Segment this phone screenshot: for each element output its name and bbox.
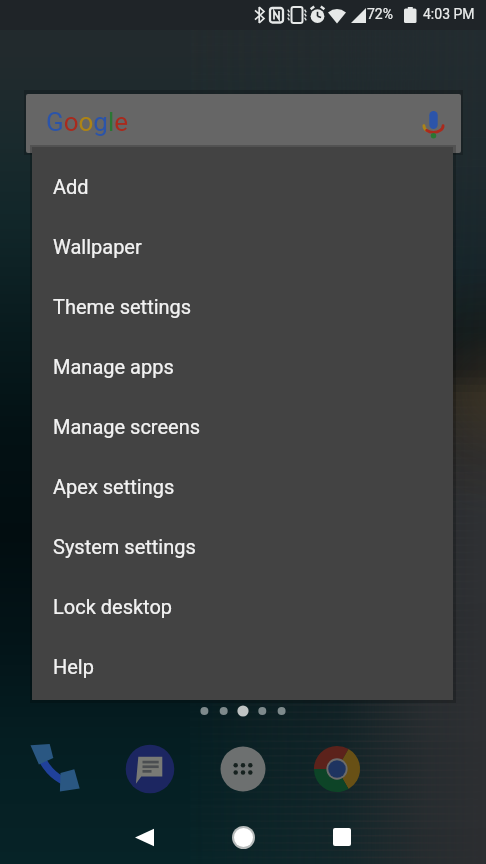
button[interactable]: Manage screens — [32, 396, 453, 456]
button[interactable]: Messages — [120, 739, 180, 799]
button[interactable]: Manage apps — [32, 336, 453, 396]
staticText: Wallpaper — [53, 235, 142, 258]
staticText: Lock desktop — [53, 595, 173, 618]
button[interactable]: Phone — [26, 739, 86, 799]
staticText: Google — [46, 107, 129, 137]
staticText: Help — [53, 655, 94, 678]
button[interactable]: Home — [219, 813, 267, 861]
button[interactable]: Google — [26, 94, 461, 153]
button[interactable]: Add — [32, 156, 453, 216]
button[interactable]: Apex settings — [32, 456, 453, 516]
button[interactable]: Back — [120, 813, 168, 861]
button[interactable]: Lock desktop — [32, 576, 453, 636]
staticText: Add — [53, 175, 89, 198]
staticText: Manage apps — [53, 355, 174, 378]
button[interactable]: Chrome — [307, 739, 367, 799]
staticText: Theme settings — [53, 295, 192, 318]
staticText: 4:03 PM — [423, 6, 475, 22]
button[interactable]: Recents — [318, 813, 366, 861]
staticText: Apex settings — [53, 475, 175, 498]
button[interactable]: Theme settings — [32, 276, 453, 336]
staticText: Manage screens — [53, 415, 201, 438]
button[interactable]: System settings — [32, 516, 453, 576]
button[interactable]: Help — [32, 636, 453, 696]
button[interactable]: All apps — [213, 739, 273, 799]
staticText: 72% — [367, 6, 393, 22]
button[interactable]: Voice search — [419, 109, 448, 138]
button[interactable]: Wallpaper — [32, 216, 453, 276]
staticText: System settings — [53, 535, 196, 558]
